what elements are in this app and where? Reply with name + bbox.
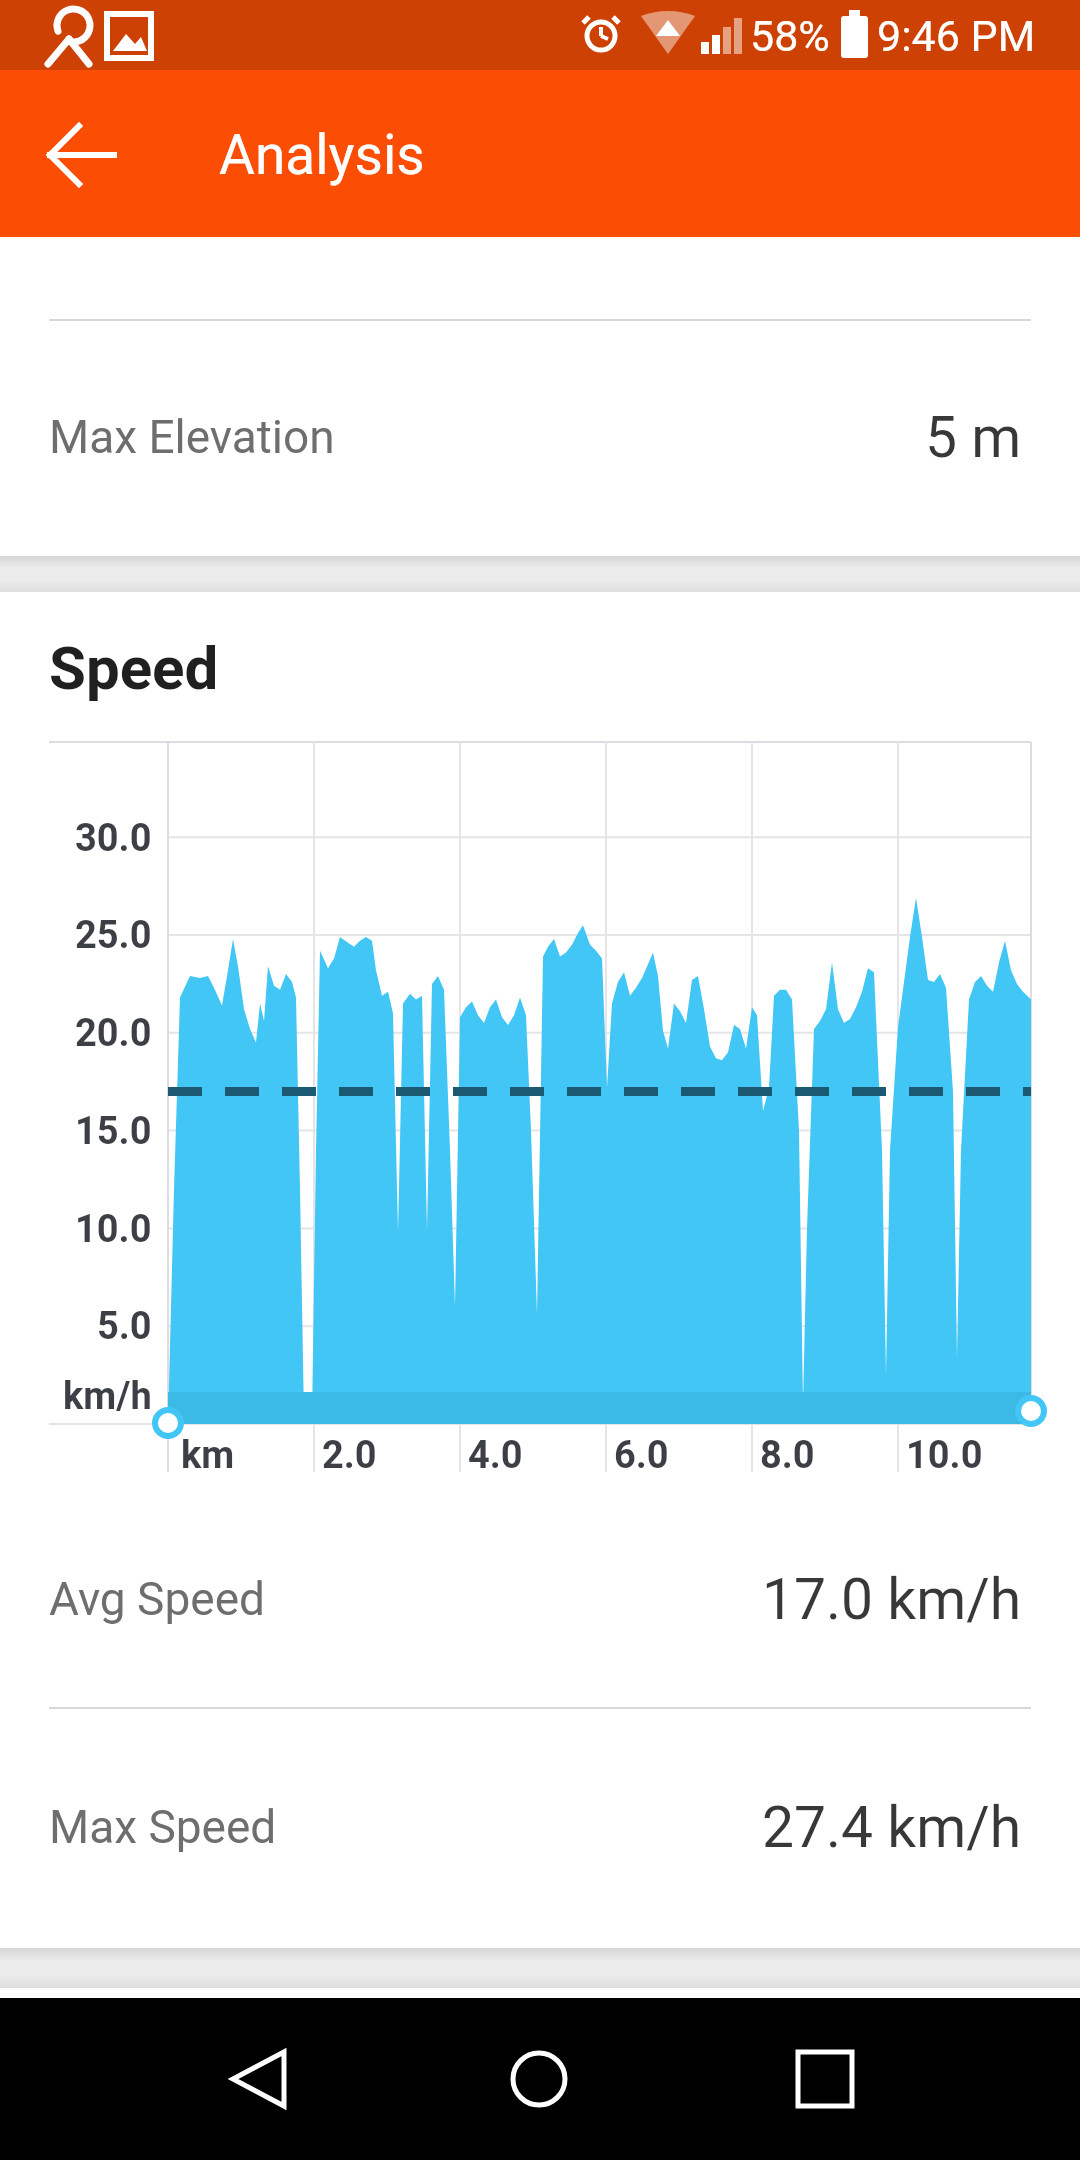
staticText: 2.0	[322, 1433, 377, 1478]
staticText: 9:46 PM	[877, 11, 1036, 59]
staticText: 6.0	[614, 1433, 669, 1478]
staticText: 25.0	[75, 913, 152, 958]
staticText: Avg Speed	[49, 1572, 265, 1626]
staticText: Analysis	[219, 123, 425, 187]
button[interactable]	[489, 2029, 589, 2129]
staticText: 8.0	[760, 1433, 815, 1478]
staticText: km	[181, 1433, 235, 1478]
staticText: 10.0	[906, 1433, 983, 1478]
staticText: 27.4 km/h	[762, 1794, 1022, 1861]
staticText: Speed	[49, 633, 219, 703]
staticText: 20.0	[75, 1011, 152, 1056]
staticText: km/h	[63, 1374, 152, 1419]
button[interactable]: Avg Speed	[49, 1549, 1022, 1649]
button[interactable]: Max Elevation	[49, 387, 1022, 487]
staticText: 17.0 km/h	[762, 1566, 1022, 1633]
staticText: Max Elevation	[49, 410, 335, 464]
staticText: 5 m	[925, 404, 1022, 471]
button[interactable]	[208, 2029, 308, 2129]
staticText: 10.0	[75, 1207, 152, 1252]
staticText: 4.0	[468, 1433, 523, 1478]
button[interactable]	[30, 103, 134, 207]
staticText: 30.0	[75, 816, 152, 861]
staticText: 58%	[750, 11, 830, 59]
button[interactable]	[775, 2029, 875, 2129]
button[interactable]: Max Speed	[49, 1777, 1022, 1877]
staticText: Max Speed	[49, 1800, 277, 1854]
staticText: 15.0	[75, 1109, 152, 1154]
staticText: 5.0	[97, 1304, 152, 1349]
